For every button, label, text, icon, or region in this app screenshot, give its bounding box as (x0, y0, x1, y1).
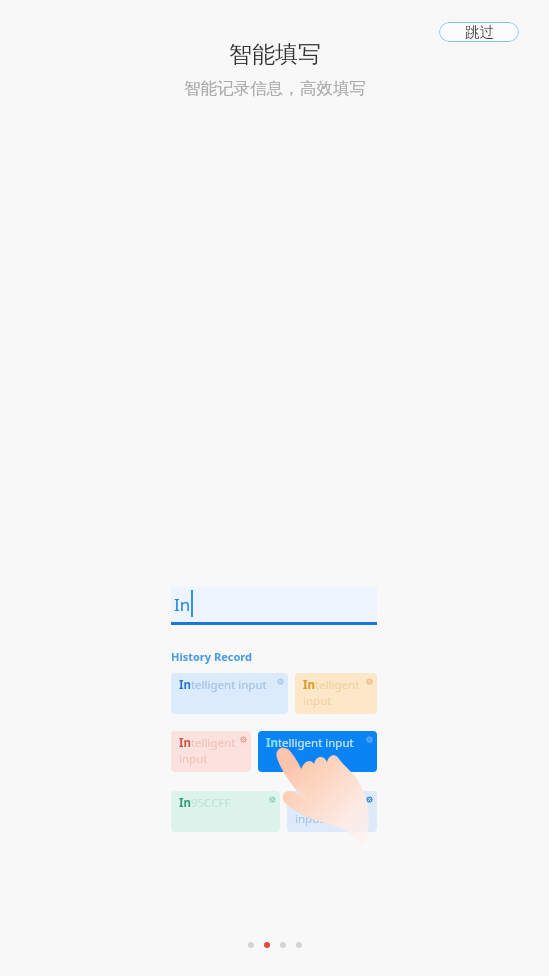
staticText: Intelligent input (295, 795, 362, 826)
staticText: Intelligent input (179, 735, 236, 766)
button[interactable]: In95CCFF (171, 791, 280, 832)
button[interactable]: Intelligent input (171, 731, 251, 772)
button[interactable]: Remove (364, 734, 375, 745)
staticText: 智能填写 (229, 40, 321, 69)
button[interactable]: In (171, 587, 377, 622)
button[interactable]: Intelligent input (287, 791, 377, 832)
button[interactable]: Intelligent input (295, 673, 377, 714)
button[interactable]: Remove (364, 676, 375, 687)
staticText: Intelligent input (266, 735, 354, 751)
button[interactable]: Remove (238, 734, 249, 745)
button[interactable]: Remove (267, 794, 278, 805)
staticText: 跳过 (465, 23, 494, 41)
button[interactable]: 跳过 (439, 22, 519, 42)
other: Tap gesture (0, 0, 549, 976)
staticText: Intelligent input (179, 677, 267, 693)
staticText: In95CCFF (179, 795, 231, 811)
button[interactable]: Intelligent input (258, 731, 377, 772)
button[interactable]: Remove (275, 676, 286, 687)
button[interactable]: Intelligent input (171, 673, 288, 714)
staticText: Intelligent input (303, 677, 362, 708)
staticText: History Record (171, 649, 252, 664)
button[interactable]: Remove (364, 794, 375, 805)
staticText: In (174, 593, 191, 616)
staticText: 智能记录信息，高效填写 (184, 78, 366, 99)
